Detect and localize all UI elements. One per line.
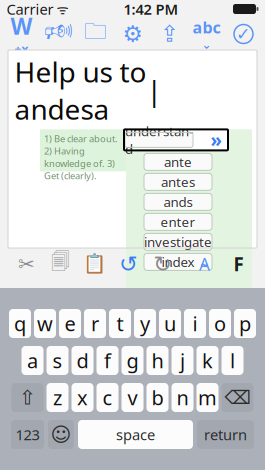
staticText: » [210,127,221,152]
staticText: u [164,310,176,337]
staticText: ☺ [50,423,71,446]
button[interactable]: Copy [43,248,77,280]
button[interactable]: Settings [114,18,151,50]
button[interactable]: p [234,309,256,338]
staticText: 📋 [83,253,106,275]
button[interactable]: ⌫ [221,383,253,412]
button[interactable]: s [46,346,68,375]
staticText: Carrier [6,0,53,19]
button[interactable]: Undo [111,248,145,280]
button[interactable]: i [184,309,206,338]
button[interactable]: u [159,309,181,338]
staticText: antes [161,173,195,191]
button[interactable]: index [144,253,212,270]
button[interactable]: k [196,346,218,375]
staticText: enter [160,213,195,231]
staticText: 🕬 [44,15,73,53]
button[interactable]: a [21,346,43,375]
button[interactable]: z [46,383,68,412]
staticText: d [76,347,88,374]
button[interactable]: t [109,309,131,338]
button[interactable]: l [221,346,243,375]
button[interactable]: ante [144,153,212,170]
button[interactable]: ⇧ [11,383,43,412]
staticText: b [151,384,163,411]
staticText: F [233,252,243,276]
staticText: p [239,310,251,337]
staticText: s [52,347,62,374]
button[interactable]: Text style [187,248,221,280]
button[interactable]: h [146,346,168,375]
staticText: index [161,253,194,271]
button[interactable]: c [96,383,118,412]
button[interactable]: w [34,309,56,338]
button[interactable]: Format [221,248,255,280]
staticText: z [53,384,62,411]
button[interactable]: d [71,346,93,375]
staticText: 🗀 [84,15,107,53]
staticText: r [91,310,99,337]
button[interactable]: m [196,383,218,412]
button[interactable]: return [197,420,254,449]
button[interactable]: Next suggestions [205,132,227,147]
button[interactable]: o [209,309,231,338]
staticText: i [192,310,197,337]
button[interactable]: Files [77,18,114,50]
button[interactable]: investigate [144,233,212,250]
staticText: understand [125,122,193,158]
staticText: k [202,347,213,374]
staticText: m [198,384,217,411]
staticText: ⚙ [122,21,142,47]
staticText: 🗐 [51,248,70,279]
button[interactable]: y [134,309,156,338]
staticText: ⇪ [160,21,179,47]
button[interactable]: e [59,309,81,338]
staticText: g [126,347,138,374]
button[interactable]: space [78,420,193,449]
staticText: return [204,425,247,444]
staticText: q [14,310,26,337]
button[interactable]: q [9,309,31,338]
button[interactable]: Check [225,18,262,50]
staticText: 1:42 PM [123,0,178,19]
staticText: ✂ [18,253,35,275]
staticText: o [214,310,226,337]
button[interactable]: ☺ [48,420,74,449]
staticText: j [180,347,185,374]
staticText: h [151,347,163,374]
button[interactable]: Spelling [188,18,225,50]
staticText: | [146,72,161,109]
staticText: ⌄ [201,38,211,51]
staticText: t [116,310,123,337]
button[interactable]: j [171,346,193,375]
button[interactable]: enter [144,213,212,230]
button[interactable]: Cut [9,248,43,280]
button[interactable]: antes [144,173,212,190]
button[interactable]: understand [125,132,193,147]
button[interactable]: ands [144,193,212,210]
button[interactable]: b [146,383,168,412]
staticText: space [116,425,155,444]
button[interactable]: 123 [11,420,44,449]
staticText: v [127,384,137,411]
staticText: ᯤ [53,0,68,18]
staticText: ⌫ [224,387,250,408]
staticText: 1) Be clear about. 2) Having knowledge o… [44,132,118,182]
button[interactable]: f [96,346,118,375]
button[interactable]: x [71,383,93,412]
button[interactable]: n [171,383,193,412]
staticText: W [10,11,32,41]
staticText: w [37,310,53,337]
button[interactable]: Share [151,18,188,50]
button[interactable]: v [121,383,143,412]
staticText: Help us to andesa [14,53,146,127]
button[interactable]: Word tools [3,18,40,50]
button[interactable]: Redo [145,248,179,280]
button[interactable]: r [84,309,106,338]
button[interactable]: g [121,346,143,375]
staticText: ÷x [14,41,28,57]
staticText: y [140,310,150,337]
staticText: ✓ [236,24,251,44]
button[interactable]: Paste [77,248,111,280]
button[interactable]: Speak [40,18,77,50]
